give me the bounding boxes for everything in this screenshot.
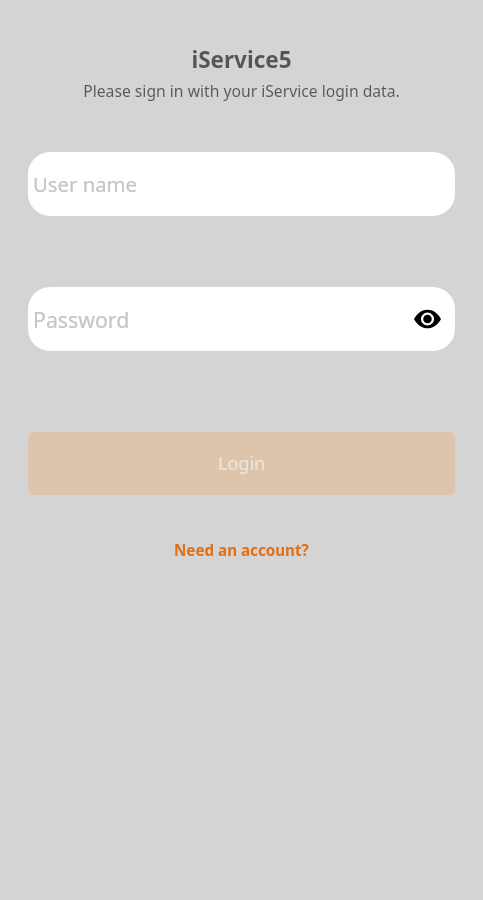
- button[interactable]: Login: [28, 432, 455, 495]
- staticText: Please sign in with your iService login …: [0, 80, 483, 101]
- staticText: Password: [33, 305, 130, 334]
- button[interactable]: Need an account?: [160, 531, 323, 570]
- button[interactable]: Password: [28, 287, 455, 351]
- button[interactable]: Show password: [413, 305, 441, 333]
- staticText: Login: [218, 451, 266, 476]
- button[interactable]: User name: [28, 152, 455, 216]
- staticText: User name: [33, 170, 138, 198]
- staticText: iService5: [0, 44, 483, 75]
- staticText: Need an account?: [174, 540, 309, 561]
